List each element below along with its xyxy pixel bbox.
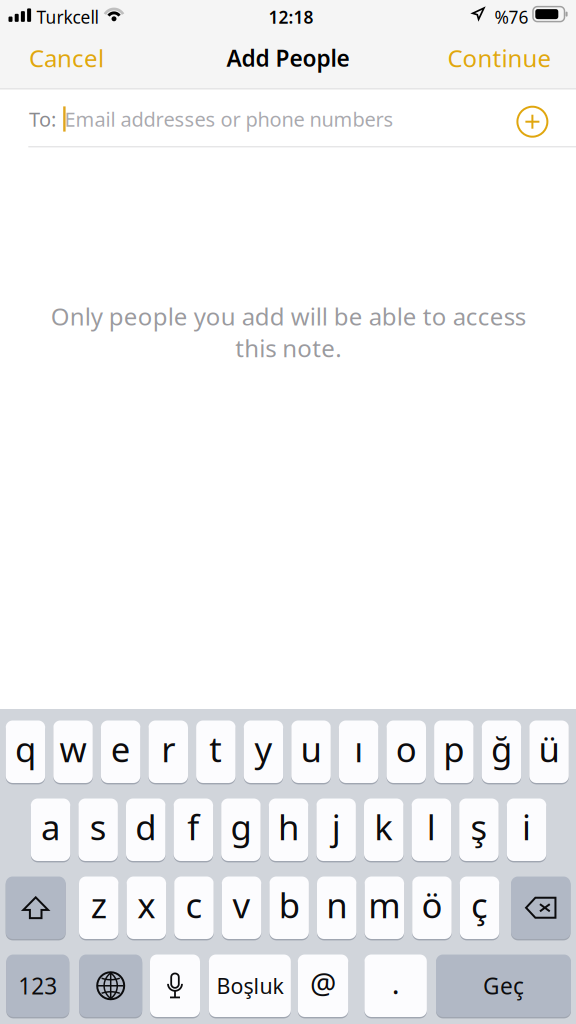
button[interactable]: Delete — [511, 876, 570, 941]
button[interactable]: x — [127, 876, 166, 941]
staticText: s — [90, 804, 107, 850]
staticText: h — [278, 804, 299, 850]
staticText: Boşluk — [216, 972, 283, 1000]
button[interactable]: Next keyboard — [79, 954, 142, 1019]
staticText: r — [161, 726, 175, 772]
staticText: k — [374, 804, 393, 850]
staticText: o — [396, 726, 417, 772]
staticText: 12:18 — [268, 5, 313, 28]
button[interactable]: Add person — [517, 107, 547, 137]
button[interactable]: Cancel — [29, 30, 149, 86]
button[interactable]: Shift — [6, 876, 66, 941]
staticText: Cancel — [29, 42, 104, 74]
button[interactable]: y — [244, 720, 283, 785]
button[interactable]: . — [364, 954, 427, 1019]
button[interactable]: ö — [412, 876, 452, 941]
staticText: l — [427, 804, 436, 850]
button[interactable]: s — [78, 798, 118, 863]
button[interactable]: a — [31, 798, 70, 863]
button[interactable]: e — [101, 720, 140, 785]
button[interactable]: ü — [529, 720, 569, 785]
button[interactable]: u — [291, 720, 331, 785]
staticText: ü — [539, 726, 560, 772]
staticText: 123 — [18, 971, 57, 1001]
staticText: x — [137, 882, 155, 928]
button[interactable]: c — [174, 876, 214, 941]
staticText: %76 — [494, 5, 528, 28]
button[interactable]: n — [317, 876, 356, 941]
staticText: n — [326, 882, 347, 928]
staticText: . — [392, 963, 400, 1002]
staticText: Geç — [483, 971, 524, 1001]
staticText: y — [254, 726, 272, 772]
staticText: t — [209, 726, 222, 772]
staticText: i — [522, 804, 531, 850]
staticText: a — [41, 804, 60, 850]
staticText: ç — [471, 882, 488, 928]
button[interactable]: p — [434, 720, 474, 785]
button[interactable]: h — [269, 798, 308, 863]
button[interactable]: l — [412, 798, 451, 863]
button[interactable]: ı — [339, 720, 378, 785]
staticText: g — [230, 804, 251, 850]
button[interactable]: z — [79, 876, 118, 941]
button[interactable]: Dictation — [150, 954, 200, 1019]
staticText: w — [60, 726, 87, 772]
button[interactable]: j — [316, 798, 356, 863]
staticText: f — [187, 804, 199, 850]
staticText: Continue — [447, 42, 551, 74]
staticText: u — [301, 726, 322, 772]
staticText: z — [91, 882, 107, 928]
button[interactable]: w — [53, 720, 93, 785]
staticText: j — [332, 804, 341, 850]
button[interactable]: v — [222, 876, 261, 941]
staticText: Add People — [226, 43, 349, 73]
button[interactable]: @ — [298, 954, 348, 1019]
staticText: c — [185, 882, 202, 928]
button[interactable]: Geç — [436, 954, 571, 1019]
button[interactable]: f — [174, 798, 213, 863]
button[interactable]: g — [221, 798, 261, 863]
staticText: m — [368, 882, 400, 928]
staticText: To: — [29, 106, 56, 132]
button[interactable]: k — [364, 798, 403, 863]
button[interactable]: t — [196, 720, 236, 785]
staticText: ö — [421, 882, 442, 928]
button[interactable]: d — [126, 798, 165, 863]
button[interactable]: q — [6, 720, 45, 785]
staticText: e — [111, 726, 131, 772]
staticText: v — [233, 882, 251, 928]
button[interactable]: ğ — [482, 720, 521, 785]
button[interactable]: Numbers — [6, 954, 69, 1019]
button[interactable]: ç — [460, 876, 499, 941]
button[interactable]: ş — [459, 798, 499, 863]
staticText: d — [135, 804, 156, 850]
staticText: q — [15, 726, 36, 772]
button[interactable]: b — [269, 876, 309, 941]
staticText: Only people you add will be able to acce… — [50, 300, 525, 364]
staticText: ğ — [491, 726, 512, 772]
button[interactable]: Continue — [447, 30, 567, 86]
button[interactable]: r — [148, 720, 188, 785]
staticText: b — [279, 882, 300, 928]
staticText: ş — [470, 804, 487, 850]
staticText: p — [443, 726, 464, 772]
button[interactable]: o — [386, 720, 426, 785]
staticText: @ — [310, 963, 336, 1002]
staticText: ı — [354, 726, 363, 772]
button[interactable]: i — [507, 798, 546, 863]
button[interactable]: Boşluk — [209, 954, 291, 1019]
staticText: Email addresses or phone numbers — [64, 106, 393, 132]
button[interactable]: m — [365, 876, 404, 941]
staticText: Turkcell — [36, 5, 98, 28]
